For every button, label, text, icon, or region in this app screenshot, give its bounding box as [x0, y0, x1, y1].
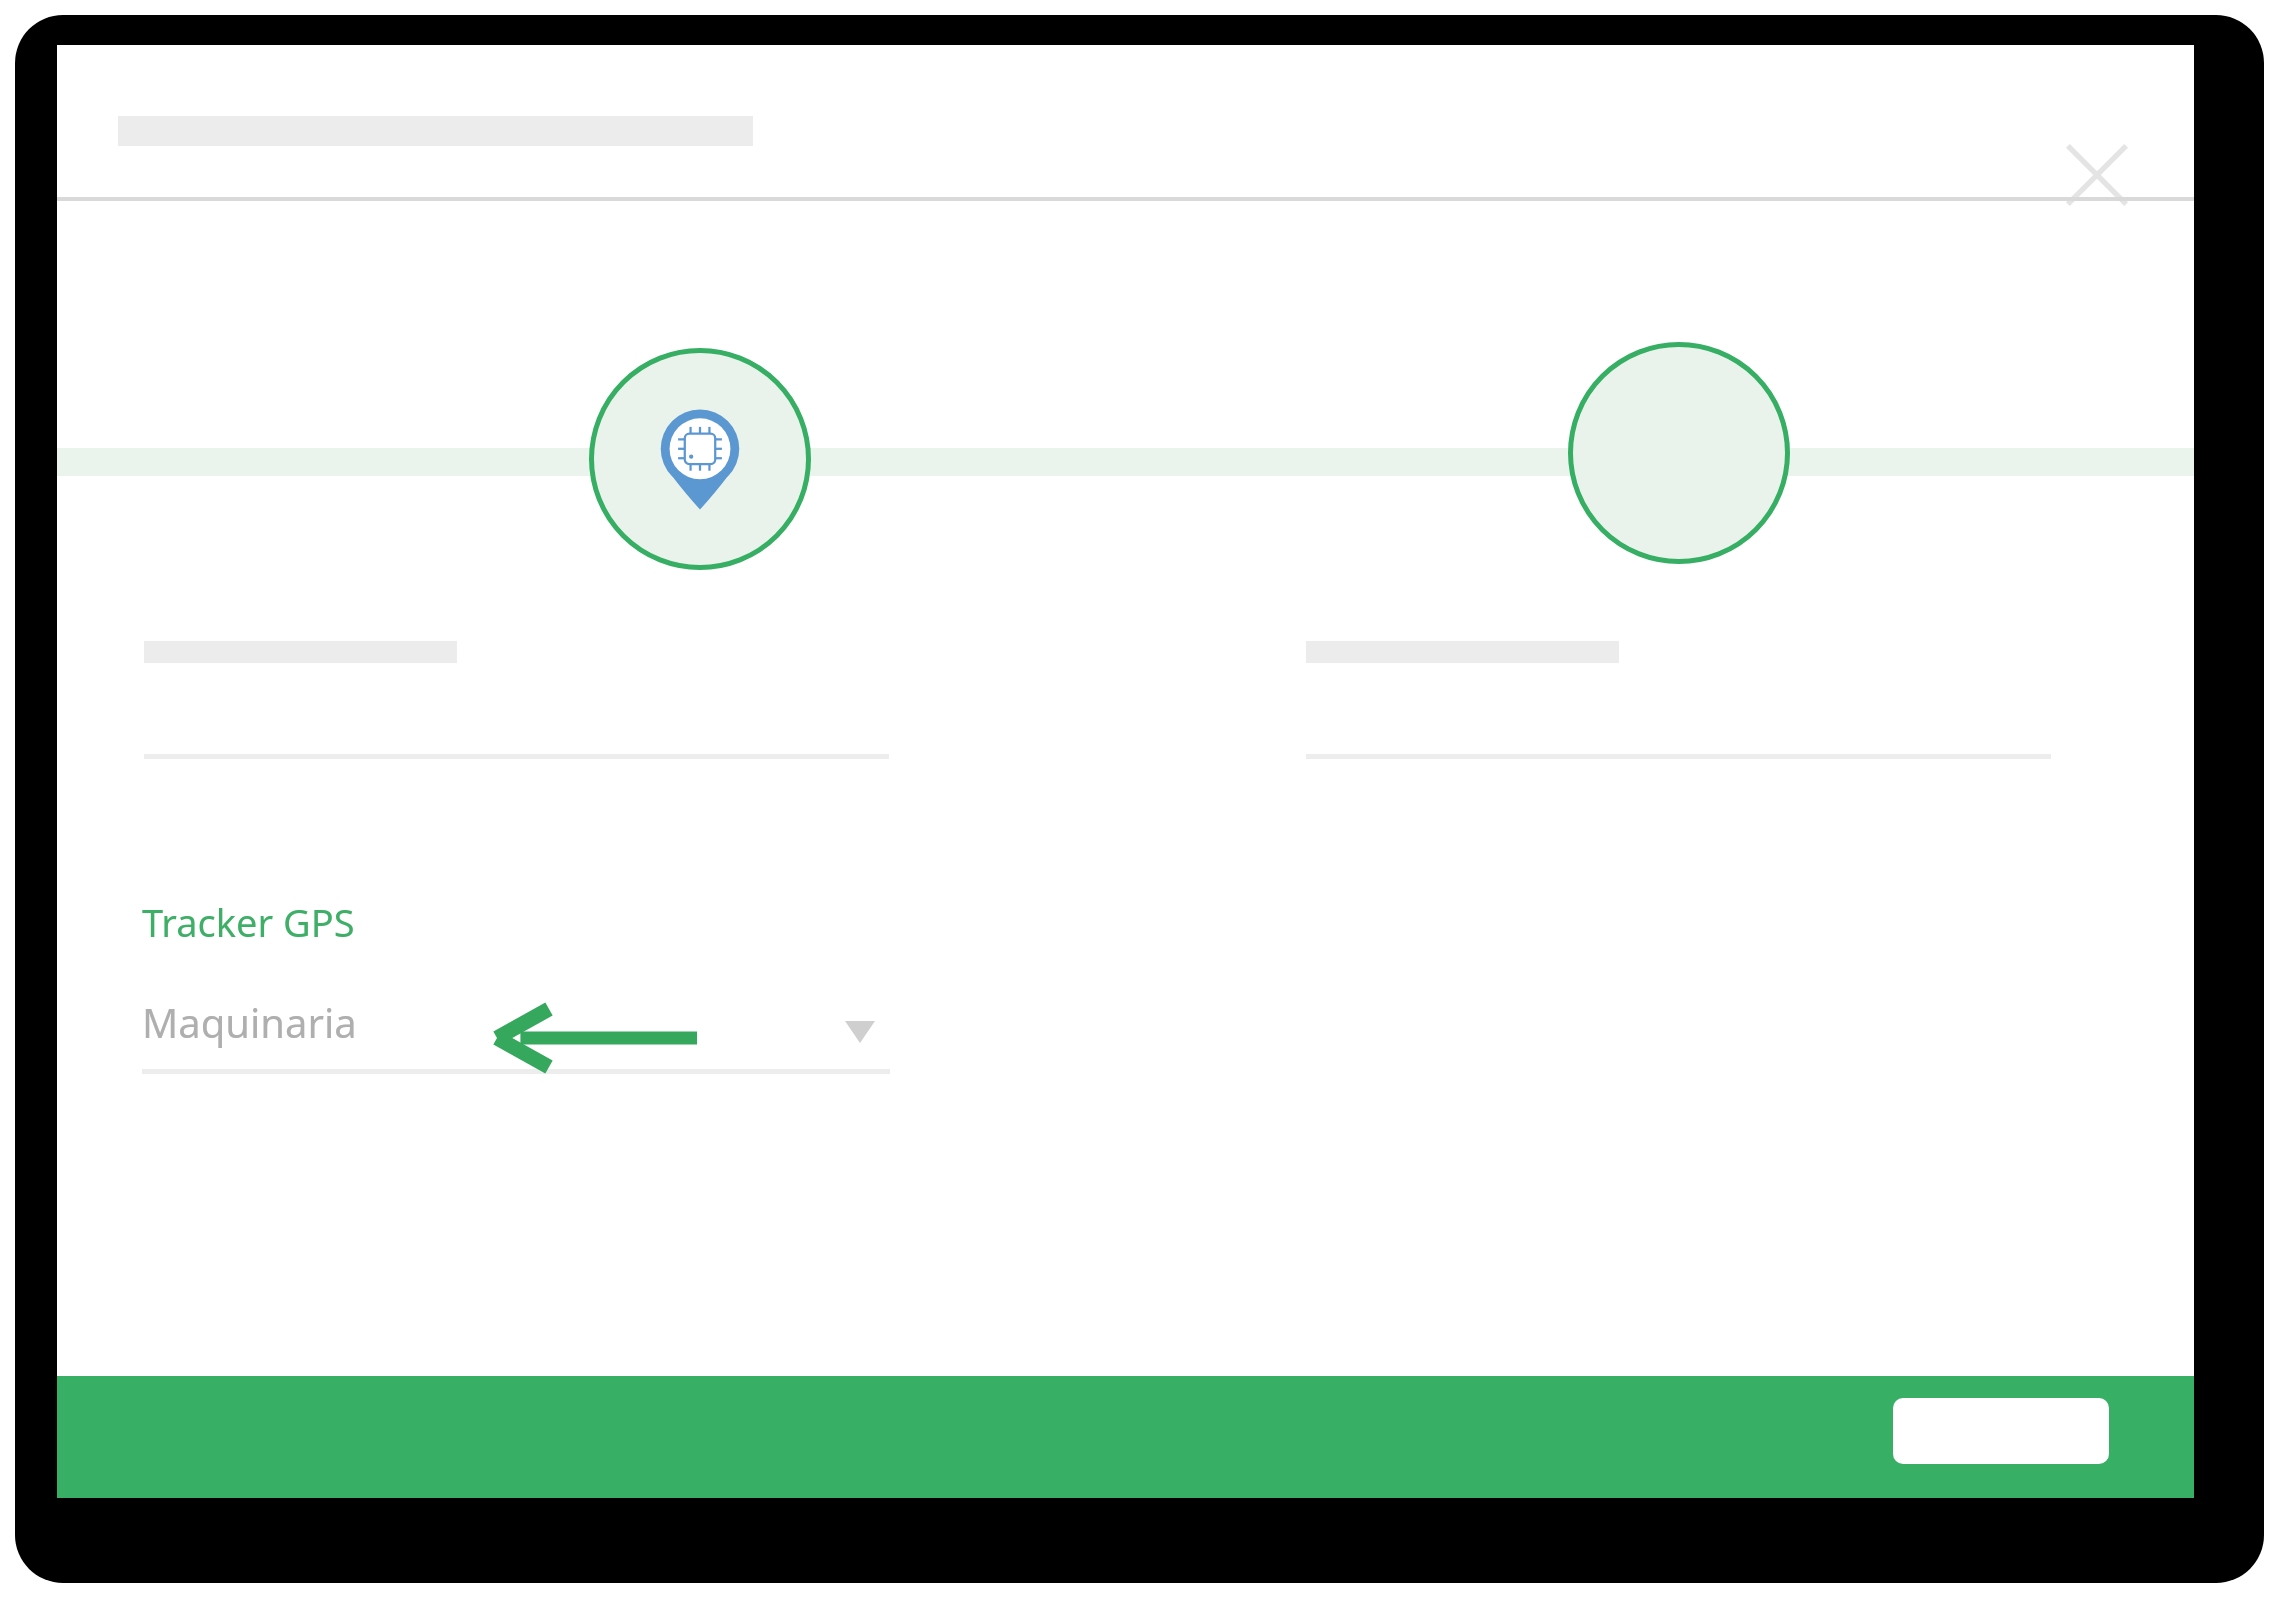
button[interactable]: Continue — [1893, 1398, 2109, 1464]
button[interactable]: Next step — [1568, 342, 1790, 564]
button[interactable]: Maquinaria — [142, 983, 890, 1075]
button[interactable]: GPS tracker step — [589, 348, 811, 570]
staticText: Tracker GPS — [142, 896, 355, 948]
staticText: Maquinaria — [142, 995, 357, 1049]
button[interactable]: Close — [2042, 120, 2152, 230]
